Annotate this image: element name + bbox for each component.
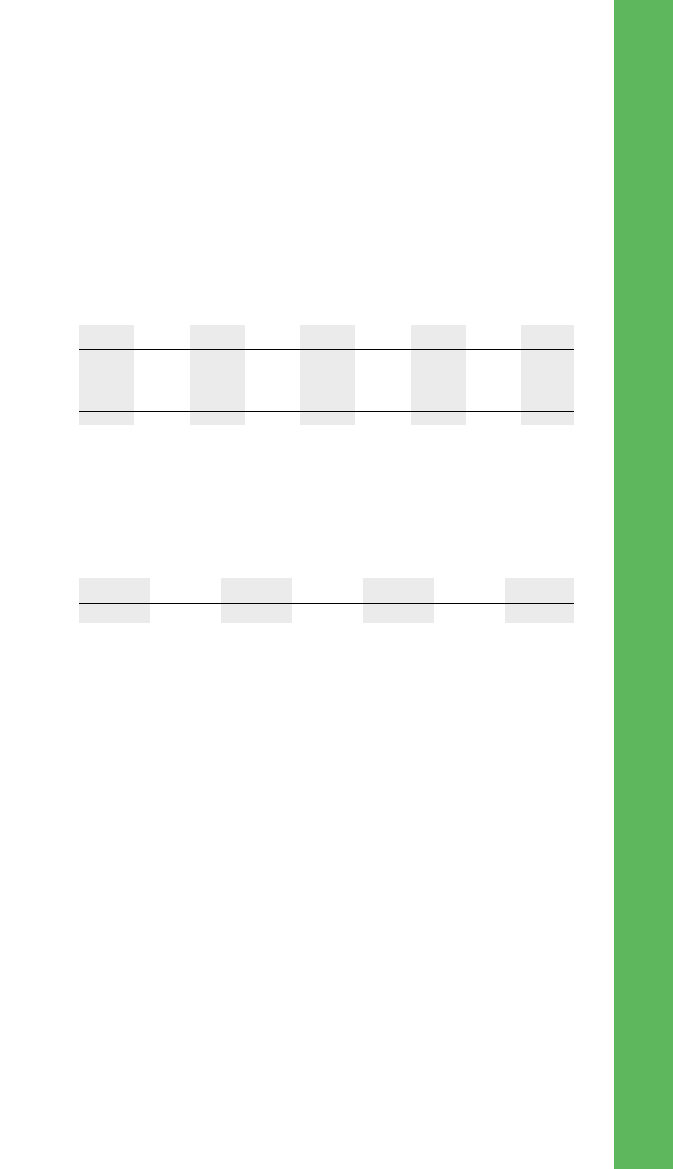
button[interactable] [221, 578, 292, 623]
button[interactable] [190, 325, 245, 425]
button[interactable] [79, 325, 134, 425]
button[interactable] [363, 578, 434, 623]
button[interactable] [411, 325, 466, 425]
button[interactable] [505, 578, 574, 623]
button[interactable] [300, 325, 355, 425]
button[interactable] [79, 578, 150, 623]
button[interactable] [521, 325, 574, 425]
